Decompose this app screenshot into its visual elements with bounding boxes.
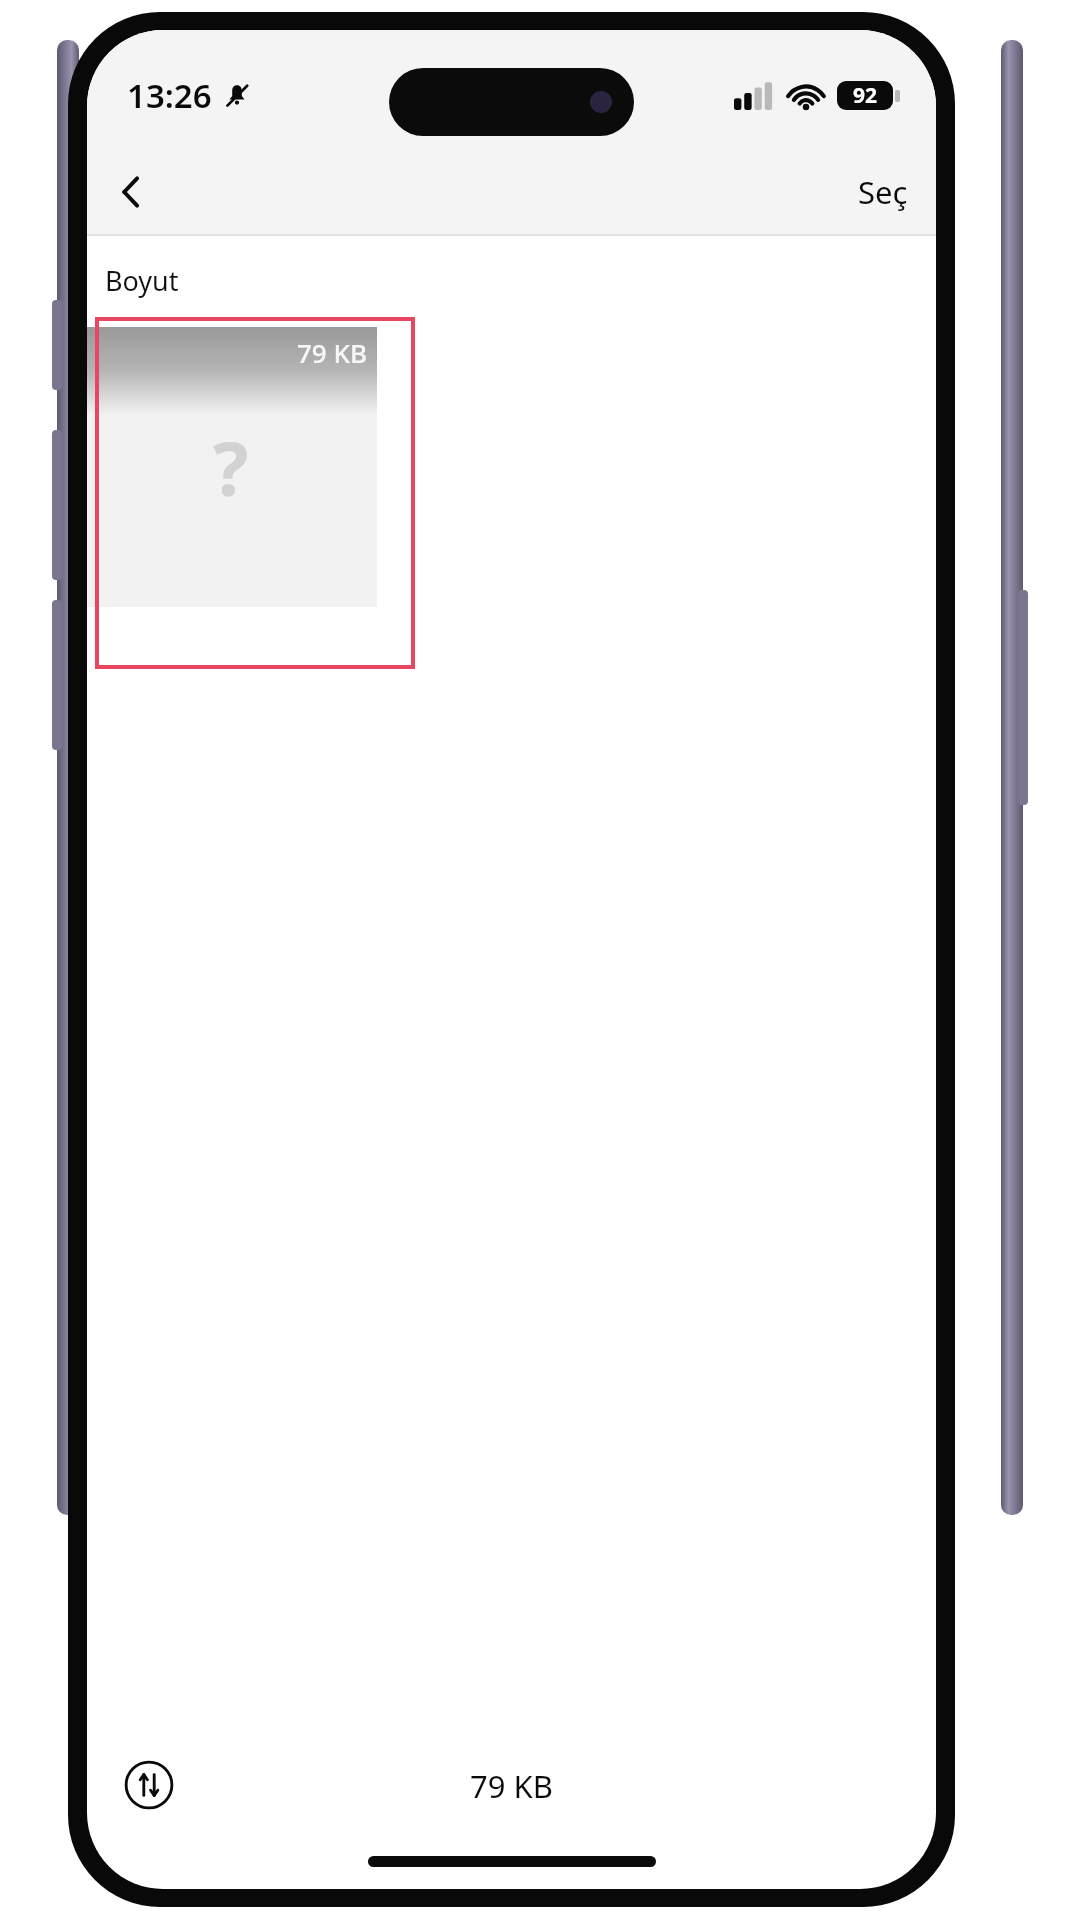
staticText: Boyut [105,262,179,299]
staticText: 92 [853,81,878,110]
staticText: Seç [858,171,908,213]
button[interactable]: ? [95,317,415,669]
staticText: ? [213,417,249,518]
button[interactable]: Sort [113,1749,185,1821]
staticText: 79 KB [470,1765,553,1807]
staticText: 13:26 [127,73,212,118]
button[interactable]: Back [95,156,167,228]
staticText: 79 KB [297,335,367,370]
button[interactable]: Seç [844,161,922,223]
